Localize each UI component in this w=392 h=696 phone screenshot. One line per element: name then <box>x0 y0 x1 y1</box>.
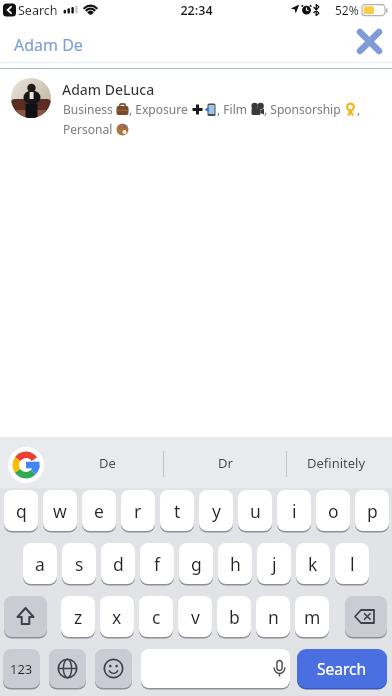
staticText: , Film <box>217 101 251 117</box>
staticText: Business <box>63 101 116 117</box>
button[interactable]: i <box>277 490 311 531</box>
button[interactable] <box>345 596 387 637</box>
button[interactable]: l <box>335 543 369 584</box>
button[interactable]: Dr <box>166 443 284 483</box>
staticText: a <box>35 552 45 576</box>
button[interactable]: m <box>295 596 329 637</box>
staticText: p <box>367 499 378 523</box>
staticText: t <box>174 499 181 523</box>
staticText: Search <box>317 658 367 679</box>
staticText: g <box>191 552 202 576</box>
button[interactable] <box>141 649 290 688</box>
button[interactable]: y <box>199 490 233 531</box>
button[interactable]: z <box>61 596 95 637</box>
button[interactable]: q <box>4 490 38 531</box>
button[interactable] <box>49 649 86 688</box>
button[interactable]: x <box>100 596 134 637</box>
staticText: b <box>229 605 240 629</box>
staticText: 52% <box>335 2 359 18</box>
button[interactable] <box>4 596 47 637</box>
button[interactable]: v <box>178 596 212 637</box>
staticText: k <box>308 552 318 576</box>
staticText: 123 <box>10 660 33 678</box>
staticText: Adam DeLuca <box>62 80 155 99</box>
staticText: j <box>272 552 277 576</box>
button[interactable]: c <box>139 596 173 637</box>
button[interactable]: h <box>218 543 252 584</box>
staticText: d <box>113 552 124 576</box>
button[interactable]: Search <box>297 649 387 688</box>
button[interactable]: j <box>257 543 291 584</box>
staticText: Dr <box>218 454 233 472</box>
staticText: v <box>191 605 200 629</box>
staticText: f <box>154 552 161 576</box>
button[interactable]: o <box>316 490 350 531</box>
button[interactable]: e <box>82 490 116 531</box>
staticText: o <box>328 499 339 523</box>
staticText: , Exposure <box>129 101 191 117</box>
staticText: , Sponsorship <box>264 101 344 117</box>
button[interactable] <box>95 649 132 688</box>
staticText: u <box>250 499 261 523</box>
button[interactable]: t <box>160 490 194 531</box>
button[interactable]: k <box>296 543 330 584</box>
staticText: n <box>268 605 279 629</box>
staticText: c <box>152 605 161 629</box>
staticText: y <box>212 499 221 523</box>
staticText: x <box>112 605 122 629</box>
button[interactable]: d <box>101 543 135 584</box>
button[interactable]: n <box>256 596 290 637</box>
button[interactable]: a <box>23 543 57 584</box>
staticText: e <box>94 499 104 523</box>
staticText: 22:34 <box>180 2 213 19</box>
button[interactable]: 123 <box>3 649 40 688</box>
button[interactable] <box>358 30 381 53</box>
button[interactable]: b <box>217 596 251 637</box>
staticText: i <box>292 499 297 523</box>
button[interactable]: g <box>179 543 213 584</box>
staticText: m <box>304 605 321 629</box>
button[interactable]: Adam DeLuca <box>0 64 392 150</box>
button[interactable]: p <box>355 490 389 531</box>
staticText: Search <box>18 2 58 19</box>
button[interactable] <box>8 447 44 483</box>
staticText: z <box>74 605 83 629</box>
button[interactable]: s <box>62 543 96 584</box>
staticText: q <box>16 499 27 523</box>
staticText: s <box>75 552 84 576</box>
button[interactable]: r <box>121 490 155 531</box>
staticText: l <box>350 552 355 576</box>
button[interactable]: Definitely <box>288 443 384 483</box>
staticText: Personal <box>63 121 116 137</box>
button[interactable]: w <box>43 490 77 531</box>
staticText: h <box>230 552 241 576</box>
staticText: , <box>357 101 361 117</box>
button[interactable]: De <box>52 443 162 483</box>
staticText: r <box>134 499 142 523</box>
staticText: De <box>99 454 116 472</box>
staticText: Adam De <box>14 34 83 56</box>
staticText: w <box>53 499 67 523</box>
button[interactable]: f <box>140 543 174 584</box>
button[interactable]: u <box>238 490 272 531</box>
staticText: Definitely <box>307 454 366 472</box>
